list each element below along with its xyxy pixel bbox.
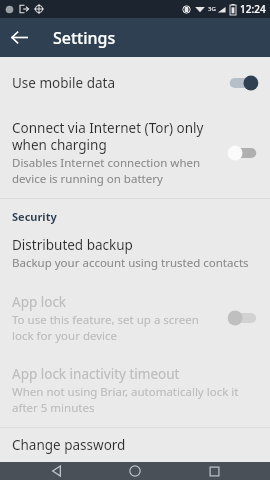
staticText: Use mobile data: [12, 74, 115, 92]
button[interactable]: Home: [113, 462, 157, 480]
staticText: Connect via Internet (Tor) only when cha…: [12, 119, 218, 154]
staticText: Disables Internet connection when device…: [12, 155, 218, 186]
button[interactable]: Connect via Internet (Tor) only when cha…: [0, 109, 270, 198]
staticText: Change password: [12, 436, 126, 454]
staticText: App lock inactivity timeout: [12, 365, 180, 383]
button[interactable]: Distributed backup: [0, 228, 270, 283]
button[interactable]: Recent apps: [192, 462, 236, 480]
staticText: 3G: [208, 5, 216, 13]
button[interactable]: Toggle: [226, 71, 260, 95]
staticText: App lock: [12, 293, 67, 311]
staticText: Backup your account using trusted contac…: [12, 255, 249, 271]
button[interactable]: Change password: [0, 428, 270, 462]
staticText: Security: [12, 209, 57, 224]
button[interactable]: App lock inactivity timeout: [0, 355, 270, 427]
staticText: When not using Briar, automatically lock…: [12, 384, 260, 415]
button[interactable]: App lock: [0, 283, 270, 355]
button[interactable]: Toggle: [226, 306, 260, 330]
staticText: Settings: [53, 27, 116, 49]
button[interactable]: Back: [35, 462, 79, 480]
staticText: 12:24: [240, 2, 266, 16]
button[interactable]: Use mobile data: [0, 57, 270, 109]
button[interactable]: Toggle: [226, 141, 260, 165]
staticText: Distributed backup: [12, 236, 133, 254]
button[interactable]: Back: [0, 18, 39, 57]
staticText: To use this feature, set up a screen loc…: [12, 312, 218, 343]
